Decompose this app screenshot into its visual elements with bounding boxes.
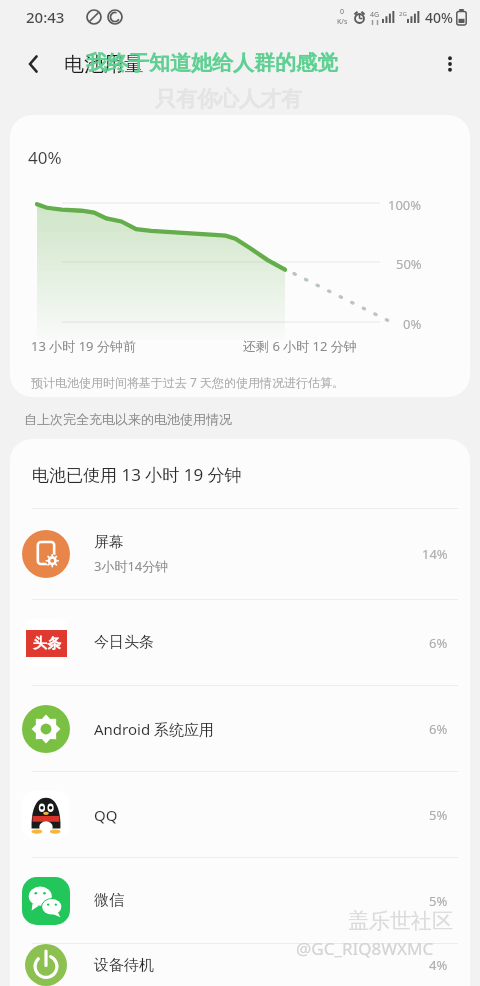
staticText: 40% — [425, 8, 453, 27]
button[interactable]: QQ — [10, 772, 470, 857]
staticText: 50% — [396, 255, 422, 273]
staticText: 5% — [429, 806, 448, 824]
staticText: 6% — [429, 634, 448, 652]
staticText: 电池用量 — [64, 52, 144, 77]
staticText: 只有你心人才有 — [155, 86, 302, 112]
staticText: K/s — [337, 17, 348, 27]
staticText: 盖乐世社区 — [348, 908, 453, 934]
button[interactable]: 微信 — [10, 858, 470, 943]
staticText: 4% — [429, 956, 448, 974]
staticText: QQ — [94, 805, 118, 825]
button[interactable]: 头条 — [10, 600, 470, 685]
staticText: 20:43 — [26, 7, 65, 27]
staticText: 还剩 6 小时 12 分钟 — [243, 337, 357, 355]
staticText: 设备待机 — [94, 956, 154, 975]
staticText: 今日头条 — [94, 633, 154, 652]
staticText: 4G — [370, 10, 380, 20]
button[interactable]: 设备待机 — [10, 944, 470, 986]
staticText: 14% — [422, 545, 448, 563]
staticText: 40% — [28, 146, 62, 169]
staticText: 2G — [399, 10, 407, 18]
staticText: 电池已使用 13 小时 19 分钟 — [32, 463, 242, 486]
button[interactable]: Android 系统应用 — [10, 686, 470, 771]
staticText: 6% — [429, 720, 448, 738]
staticText: 3小时14分钟 — [94, 557, 169, 575]
staticText: 头条 — [33, 635, 61, 653]
staticText: Android 系统应用 — [94, 719, 215, 739]
staticText: 微信 — [94, 891, 124, 910]
button[interactable]: 屏幕 — [10, 509, 470, 599]
staticText: 5% — [429, 892, 448, 910]
staticText: 0 — [340, 7, 345, 17]
button[interactable]: 更多选项 — [428, 42, 472, 86]
button[interactable]: 返回 — [12, 42, 56, 86]
staticText: 屏幕 — [94, 533, 124, 552]
staticText: 100% — [388, 196, 422, 214]
staticText: 自上次完全充电以来的电池使用情况 — [24, 411, 232, 427]
staticText: 13 小时 19 分钟前 — [31, 337, 136, 355]
staticText: 预计电池使用时间将基于过去 7 天您的使用情况进行估算。 — [31, 374, 345, 390]
staticText: 0% — [403, 315, 422, 333]
staticText: 我终于知道她给人群的感觉 — [86, 50, 338, 76]
staticText: @GC_RIQ8WXMC — [296, 937, 434, 960]
